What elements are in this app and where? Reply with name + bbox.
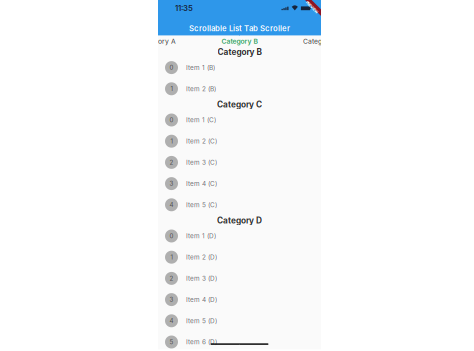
staticText: Item 2 (B) (186, 85, 216, 93)
button[interactable]: 1 (158, 247, 321, 268)
button[interactable]: Category B (198, 35, 280, 47)
button[interactable]: 3 (158, 289, 321, 310)
staticText: Item 1 (B) (186, 64, 215, 71)
button[interactable]: 4 (158, 310, 321, 331)
staticText: Item 1 (C) (186, 116, 216, 124)
staticText: Item 6 (D) (186, 338, 217, 346)
staticText: Category D (217, 215, 262, 225)
staticText: 0 (169, 116, 173, 124)
button[interactable]: 4 (158, 194, 321, 215)
staticText: Item 2 (C) (186, 137, 217, 145)
staticText: Category A (139, 37, 176, 45)
button[interactable]: 5 (158, 331, 321, 351)
staticText: 2 (169, 275, 173, 282)
staticText: 1 (170, 253, 172, 261)
button[interactable]: 3 (158, 173, 321, 194)
staticText: 0 (169, 232, 173, 240)
staticText: Item 5 (C) (186, 201, 217, 209)
staticText: 5 (169, 338, 173, 346)
staticText: Item 5 (D) (186, 317, 217, 325)
button[interactable]: Category C (280, 35, 362, 47)
staticText: Item 3 (D) (186, 274, 217, 282)
button[interactable]: Category A (116, 35, 198, 47)
staticText: Category B (217, 47, 261, 57)
button[interactable]: 2 (158, 268, 321, 289)
button[interactable]: 0 (158, 57, 321, 78)
staticText: 3 (169, 180, 173, 187)
button[interactable]: 1 (158, 78, 321, 99)
staticText: 11:35 (175, 3, 193, 13)
staticText: Item 4 (C) (186, 180, 217, 187)
button[interactable]: 0 (158, 225, 321, 247)
staticText: Item 4 (D) (186, 296, 217, 303)
staticText: 1 (170, 85, 172, 92)
staticText: 3 (169, 296, 173, 303)
staticText: PREVIEW (304, 5, 320, 10)
staticText: 4 (169, 201, 173, 208)
button[interactable]: 2 (158, 152, 321, 173)
staticText: Item 3 (C) (186, 158, 217, 166)
staticText: 2 (169, 159, 173, 166)
staticText: 0 (169, 64, 173, 71)
button[interactable]: 0 (158, 109, 321, 131)
staticText: Category C (217, 99, 262, 109)
staticText: Category B (221, 37, 257, 45)
staticText: Scrollable List Tab Scroller (189, 24, 290, 33)
staticText: Item 2 (D) (186, 253, 217, 261)
staticText: 1 (170, 137, 172, 145)
staticText: 4 (169, 317, 173, 324)
staticText: Category C (303, 37, 340, 45)
button[interactable]: 1 (158, 131, 321, 152)
staticText: Item 1 (D) (186, 232, 216, 240)
